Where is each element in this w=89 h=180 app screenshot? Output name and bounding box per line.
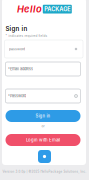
staticText: PACKAGE bbox=[44, 6, 70, 13]
staticText: *Password bbox=[8, 94, 26, 98]
button[interactable]: Login with Email bbox=[5, 134, 80, 146]
staticText: Sign in bbox=[35, 113, 50, 119]
button[interactable]: Sign in bbox=[5, 110, 80, 122]
staticText: password bbox=[9, 47, 25, 51]
staticText: or bbox=[41, 124, 44, 128]
staticText: Sign in bbox=[5, 25, 27, 32]
staticText: * indicates required fields bbox=[5, 34, 47, 38]
staticText: Version 3.0.0p | ©2025 HelloPackage Solu… bbox=[2, 170, 86, 173]
staticText: *Email address bbox=[8, 67, 33, 71]
staticText: Login with Email bbox=[26, 137, 60, 143]
staticText: Hello bbox=[17, 3, 42, 15]
